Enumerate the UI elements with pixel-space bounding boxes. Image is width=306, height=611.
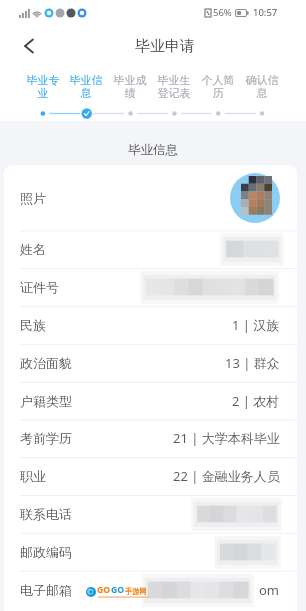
staticText: GO: [111, 584, 125, 596]
button[interactable]: 政治面貌: [4, 344, 297, 382]
button[interactable]: 联系电话: [4, 495, 297, 533]
button[interactable]: 民族: [4, 306, 297, 344]
staticText: 毕业成绩: [113, 73, 147, 100]
staticText: 13 | 群众: [225, 354, 280, 372]
staticText: 职业: [20, 468, 46, 484]
button[interactable]: 姓名: [4, 230, 297, 268]
staticText: 毕业生登记表: [157, 73, 191, 100]
staticText: 毕业信息: [69, 73, 103, 100]
staticText: 联系电话: [20, 506, 72, 522]
button[interactable]: 毕业专业: [21, 73, 64, 100]
button[interactable]: 证件号: [4, 268, 297, 306]
staticText: om: [259, 581, 280, 599]
staticText: 56%: [213, 6, 232, 19]
button[interactable]: 确认信息: [240, 73, 284, 100]
staticText: 政治面貌: [20, 355, 72, 371]
button[interactable]: 考前学历: [4, 419, 297, 457]
staticText: 姓名: [20, 241, 46, 257]
button[interactable]: 职业: [4, 457, 297, 495]
staticText: 户籍类型: [20, 393, 72, 409]
staticText: 10:57: [253, 6, 278, 19]
staticText: 照片: [20, 190, 46, 206]
staticText: 手游网: [125, 587, 147, 596]
staticText: 民族: [20, 317, 46, 333]
staticText: 22 | 金融业务人员: [173, 467, 280, 485]
button[interactable]: 照片: [4, 165, 297, 230]
staticText: 电子邮箱: [20, 582, 72, 598]
staticText: 1 | 汉族: [232, 316, 280, 334]
staticText: 毕业信息: [128, 142, 178, 158]
button[interactable]: 电子邮箱: [4, 571, 297, 609]
staticText: 个人简历: [201, 73, 235, 100]
staticText: 证件号: [20, 279, 59, 295]
staticText: 2 | 农村: [232, 392, 280, 410]
button[interactable]: 毕业生登记表: [152, 73, 196, 100]
staticText: 毕业专业: [26, 73, 60, 100]
button[interactable]: 邮政编码: [4, 533, 297, 571]
staticText: 邮政编码: [20, 544, 72, 560]
button[interactable]: 毕业信息: [64, 73, 108, 100]
staticText: GO: [97, 584, 111, 596]
staticText: 21 | 大学本科毕业: [173, 429, 280, 447]
staticText: 考前学历: [20, 430, 72, 446]
button[interactable]: 毕业成绩: [108, 73, 152, 100]
button[interactable]: Back: [8, 25, 50, 67]
button[interactable]: 个人简历: [196, 73, 240, 100]
button[interactable]: 户籍类型: [4, 382, 297, 420]
staticText: 毕业申请: [135, 37, 195, 56]
staticText: 确认信息: [245, 73, 279, 100]
